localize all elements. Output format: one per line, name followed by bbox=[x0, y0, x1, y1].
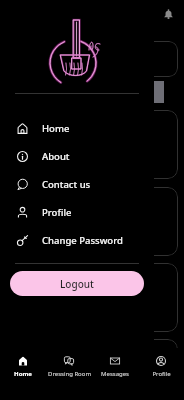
button[interactable]: Change Password bbox=[0, 226, 154, 254]
staticText: Home bbox=[42, 122, 70, 135]
staticText: About bbox=[42, 150, 70, 163]
button[interactable] bbox=[100, 41, 178, 77]
button[interactable]: Home bbox=[0, 348, 46, 400]
staticText: Dressing Room bbox=[48, 370, 91, 378]
staticText: Profile bbox=[152, 370, 171, 378]
button[interactable]: Profile bbox=[138, 348, 184, 400]
staticText: Change Password bbox=[42, 234, 123, 247]
button[interactable] bbox=[100, 263, 178, 332]
button[interactable] bbox=[100, 339, 178, 400]
button[interactable]: Profile bbox=[0, 198, 154, 226]
button[interactable]: About bbox=[0, 142, 154, 170]
button[interactable]: Dressing Room bbox=[46, 348, 92, 400]
staticText: Contact us bbox=[42, 178, 91, 191]
button[interactable]: Notifications bbox=[160, 6, 177, 23]
staticText: Messages bbox=[101, 370, 129, 378]
button[interactable]: Logout bbox=[10, 271, 144, 296]
button[interactable] bbox=[100, 110, 178, 179]
staticText: Logout bbox=[60, 277, 94, 291]
button[interactable] bbox=[100, 187, 178, 256]
button[interactable]: Messages bbox=[92, 348, 138, 400]
button[interactable]: Contact us bbox=[0, 170, 154, 198]
staticText: Home bbox=[14, 370, 32, 378]
staticText: Profile bbox=[42, 206, 72, 219]
button[interactable]: Home bbox=[0, 114, 154, 142]
